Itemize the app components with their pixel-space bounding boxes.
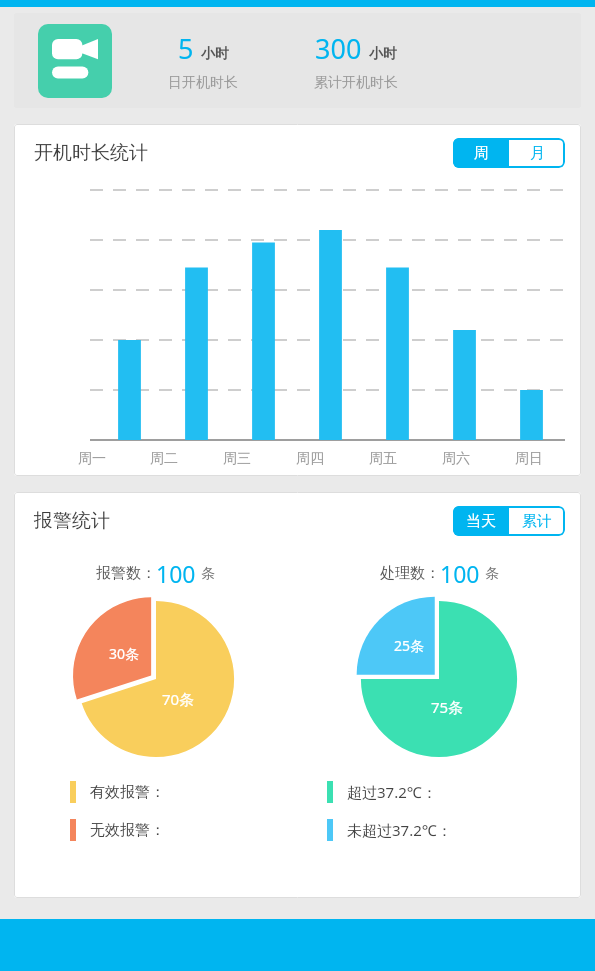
- staticText: 累计开机时长: [314, 74, 398, 92]
- staticText: 条: [485, 565, 499, 583]
- button[interactable]: Device: [38, 24, 112, 98]
- staticText: 100: [156, 558, 196, 589]
- button[interactable]: 处理数：: [380, 558, 499, 589]
- staticText: 周三: [223, 450, 251, 468]
- staticText: 周二: [150, 450, 178, 468]
- staticText: 超过37.2℃：: [347, 782, 437, 802]
- staticText: 周: [474, 144, 489, 163]
- staticText: 30条: [109, 644, 140, 663]
- staticText: 5: [178, 30, 194, 67]
- staticText: 有效报警：: [90, 783, 165, 802]
- button[interactable]: 报警数：: [96, 558, 215, 589]
- staticText: 周一: [78, 450, 106, 468]
- staticText: 100: [440, 558, 480, 589]
- staticText: 报警数：: [96, 564, 156, 583]
- staticText: 周五: [369, 450, 397, 468]
- staticText: 条: [201, 565, 215, 583]
- button[interactable]: 累计: [509, 506, 565, 536]
- staticText: 周四: [296, 450, 324, 468]
- button[interactable]: 月: [509, 138, 565, 168]
- staticText: 周六: [442, 450, 470, 468]
- staticText: 累计: [522, 512, 552, 531]
- button[interactable]: 有效报警：: [70, 781, 165, 803]
- staticText: 处理数：: [380, 564, 440, 583]
- button[interactable]: 无效报警：: [70, 819, 165, 841]
- staticText: 报警统计: [34, 509, 110, 533]
- button[interactable]: 未超过37.2℃：: [327, 819, 452, 841]
- staticText: 25条: [394, 636, 425, 655]
- staticText: 300: [315, 30, 362, 67]
- staticText: 当天: [466, 512, 496, 531]
- staticText: 月: [530, 144, 545, 163]
- staticText: 未超过37.2℃：: [347, 820, 452, 840]
- button[interactable]: Device: [14, 13, 581, 108]
- staticText: 无效报警：: [90, 821, 165, 840]
- button[interactable]: 当天: [453, 506, 509, 536]
- staticText: 75条: [431, 697, 464, 717]
- staticText: 小时: [369, 45, 397, 63]
- staticText: 小时: [201, 45, 229, 63]
- button[interactable]: 超过37.2℃：: [327, 781, 437, 803]
- staticText: 周日: [515, 450, 543, 468]
- button[interactable]: 周: [453, 138, 509, 168]
- staticText: 70条: [162, 689, 195, 709]
- staticText: 开机时长统计: [34, 141, 148, 165]
- staticText: 日开机时长: [168, 74, 238, 92]
